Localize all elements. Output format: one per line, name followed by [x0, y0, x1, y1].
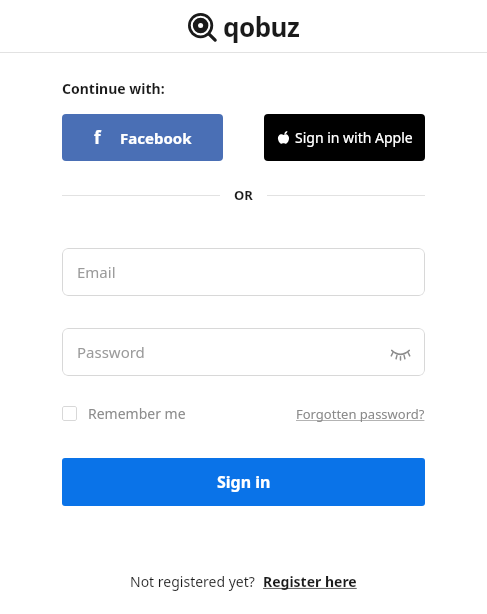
staticText: Remember me [88, 404, 186, 423]
staticText: Email [77, 262, 116, 282]
staticText: Forgotten password? [296, 405, 425, 423]
staticText: Sign in [217, 471, 271, 493]
staticText: Sign in with Apple [295, 128, 413, 147]
staticText: Register here [263, 572, 357, 591]
button[interactable]: Password [62, 328, 425, 376]
staticText: Not registered yet? [130, 572, 255, 591]
button[interactable]: Show password [388, 340, 412, 364]
button[interactable]: Email [62, 248, 425, 296]
button[interactable]: Sign in [62, 458, 425, 506]
staticText: Facebook [120, 128, 192, 148]
button[interactable]: Sign in with Apple [264, 114, 425, 161]
staticText: OR [234, 186, 253, 204]
button[interactable]: f [62, 114, 223, 161]
button[interactable]: Register here [263, 572, 357, 591]
staticText: Continue with: [62, 79, 165, 98]
button[interactable]: Forgotten password? [296, 405, 425, 423]
staticText: f [94, 126, 101, 149]
button[interactable]: Remember me [62, 404, 186, 423]
staticText: Password [77, 342, 145, 362]
staticText: qobuz [223, 9, 300, 44]
